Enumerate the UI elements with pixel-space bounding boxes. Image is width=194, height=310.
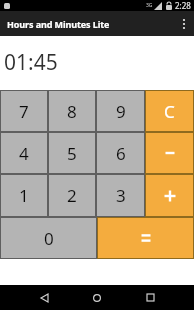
button[interactable] [145,174,194,217]
staticText: C [164,100,175,123]
button[interactable]: 5 [48,132,96,174]
staticText: 01:45 [4,48,58,77]
staticText: 8 [67,100,77,123]
staticText: 9 [116,100,126,123]
staticText: 7 [19,100,29,123]
button[interactable] [174,11,194,36]
button[interactable]: 8 [48,90,96,132]
button[interactable] [97,217,194,259]
button[interactable] [145,132,194,174]
button[interactable]: 6 [96,132,145,174]
staticText: 5 [67,142,77,165]
staticText: 4 [19,142,29,165]
button[interactable] [80,285,114,310]
button[interactable]: 1 [0,174,48,217]
button[interactable]: 4 [0,132,48,174]
staticText: 2 [67,184,77,207]
button[interactable]: 3 [96,174,145,217]
button[interactable] [27,285,61,310]
button[interactable]: C [145,90,194,132]
button[interactable] [133,285,167,310]
staticText: 3G [146,2,153,9]
button[interactable]: 7 [0,90,48,132]
staticText: 3 [116,184,126,207]
staticText: 1 [19,184,29,207]
staticText: 0 [44,227,54,250]
staticText: 2:28 [175,0,191,11]
button[interactable]: 2 [48,174,96,217]
staticText: Hours and Minutes Lite [7,18,110,30]
button[interactable]: 0 [0,217,97,259]
button[interactable]: 9 [96,90,145,132]
staticText: 6 [116,142,126,165]
